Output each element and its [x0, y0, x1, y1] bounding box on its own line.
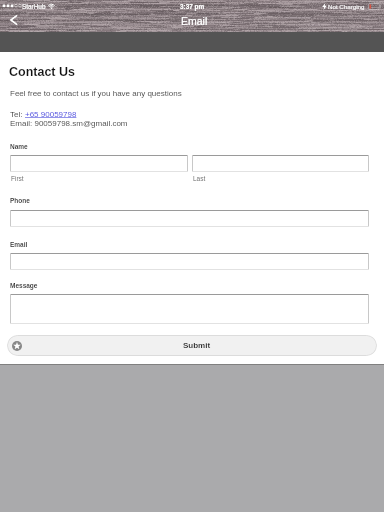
staticText: Name	[10, 143, 28, 150]
staticText: Tel:	[10, 110, 25, 119]
staticText: Last	[193, 175, 206, 182]
button[interactable]: +65 90059798	[25, 110, 77, 119]
staticText: Submit	[183, 341, 211, 350]
staticText: Email	[10, 241, 28, 248]
button[interactable]: Back	[4, 11, 22, 29]
staticText: 3:37 pm	[180, 3, 205, 10]
staticText: First	[11, 175, 24, 182]
button[interactable]	[10, 155, 188, 172]
staticText: Message	[10, 282, 38, 289]
staticText: Contact Us	[9, 65, 75, 79]
staticText: Phone	[10, 197, 30, 204]
button[interactable]	[10, 210, 369, 227]
staticText: StarHub	[22, 3, 46, 10]
staticText: +65 90059798	[25, 110, 77, 119]
button[interactable]: Submit	[7, 335, 377, 356]
staticText: Email	[181, 15, 208, 27]
button[interactable]	[10, 294, 369, 324]
staticText: Not Charging	[328, 3, 365, 10]
button[interactable]	[192, 155, 369, 172]
staticText: Email: 90059798.sm@gmail.com	[10, 119, 128, 128]
button[interactable]	[10, 253, 369, 270]
staticText: Feel free to contact us if you have any …	[10, 89, 182, 98]
